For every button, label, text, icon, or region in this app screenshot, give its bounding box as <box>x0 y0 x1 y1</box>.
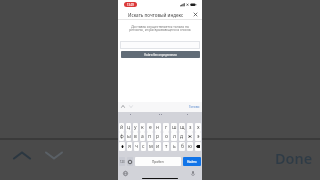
staticText: ш <box>172 124 177 131</box>
button[interactable]: Previous field <box>120 103 126 110</box>
button[interactable]: з <box>187 123 193 132</box>
button[interactable]: Shift <box>119 142 125 151</box>
button[interactable]: а <box>140 132 145 141</box>
staticText: м <box>149 143 153 150</box>
button[interactable]: о <box>163 132 169 141</box>
staticText: й <box>120 124 124 131</box>
button[interactable]: Готово <box>189 105 200 109</box>
button[interactable]: л <box>171 132 177 141</box>
staticText: з <box>189 124 192 131</box>
button[interactable]: в <box>133 132 138 141</box>
staticText: Done <box>275 148 313 168</box>
button[interactable]: н <box>155 123 161 132</box>
staticText: а <box>141 133 144 140</box>
button[interactable]: у <box>133 123 138 132</box>
staticText: ы <box>127 133 131 140</box>
button[interactable]: р <box>155 132 161 141</box>
staticText: Готово <box>189 105 200 109</box>
button[interactable]: Previous <box>9 146 35 164</box>
button[interactable]: э <box>195 132 201 141</box>
button[interactable]: ю <box>187 142 193 151</box>
button[interactable]: ы <box>126 132 131 141</box>
staticText: р <box>156 133 160 140</box>
button[interactable]: Пробел <box>135 157 181 166</box>
button[interactable]: 123 <box>119 157 125 166</box>
staticText: ч <box>135 143 138 150</box>
button[interactable]: к <box>140 123 145 132</box>
staticText: л <box>173 133 176 140</box>
button[interactable]: Backspace <box>195 142 201 151</box>
button[interactable]: с <box>141 142 146 151</box>
staticText: щ <box>180 124 185 131</box>
staticText: е <box>149 124 152 131</box>
staticText: 13:29 <box>127 3 134 7</box>
button[interactable]: Emoji <box>127 157 133 166</box>
staticText: б <box>181 143 184 150</box>
button[interactable]: д <box>179 132 185 141</box>
button[interactable]: е <box>147 123 153 132</box>
button[interactable]: ч <box>134 142 139 151</box>
button[interactable]: х <box>195 123 201 132</box>
staticText: Найти <box>187 160 197 164</box>
staticText: ю <box>188 143 192 150</box>
button[interactable]: щ <box>179 123 185 132</box>
button[interactable]: и <box>155 142 161 151</box>
button[interactable]: т <box>163 142 169 151</box>
staticText: я <box>128 143 131 150</box>
button[interactable]: ш <box>171 123 177 132</box>
button[interactable]: Найти без определения <box>121 51 200 58</box>
button[interactable]: Next <box>41 146 67 164</box>
staticText: и <box>156 143 160 150</box>
button[interactable]: п <box>147 132 153 141</box>
staticText: ь <box>173 143 176 150</box>
staticText: 123 <box>120 160 125 164</box>
staticText: с <box>142 143 145 150</box>
button[interactable]: я <box>127 142 132 151</box>
staticText: н <box>156 124 160 131</box>
button[interactable]: й <box>119 123 124 132</box>
staticText: в <box>134 133 137 140</box>
staticText: т <box>165 143 168 150</box>
staticText: ф <box>120 133 124 140</box>
staticText: д <box>180 133 184 140</box>
button[interactable]: Close <box>192 11 199 18</box>
staticText: Искать почтовый индекс <box>128 12 184 18</box>
staticText: ц <box>127 124 131 131</box>
button[interactable]: ж <box>187 132 193 141</box>
button[interactable]: Done <box>275 148 313 168</box>
staticText: п <box>148 133 152 140</box>
staticText: Найти без определения <box>144 53 177 57</box>
staticText: Доставка осуществляется только на регион… <box>118 24 202 32</box>
button[interactable]: ф <box>119 132 124 141</box>
staticText: г <box>165 124 168 131</box>
staticText: Пробел <box>152 160 164 164</box>
button[interactable]: м <box>148 142 153 151</box>
staticText: о <box>165 133 168 140</box>
button[interactable]: Next field <box>128 103 134 110</box>
button[interactable]: г <box>163 123 169 132</box>
button[interactable] <box>120 41 200 49</box>
staticText: х <box>197 124 200 131</box>
button[interactable]: Найти <box>183 157 201 166</box>
button[interactable]: б <box>179 142 185 151</box>
button[interactable]: ь <box>171 142 177 151</box>
staticText: к <box>141 124 144 131</box>
staticText: э <box>197 133 200 140</box>
staticText: ж <box>188 133 192 140</box>
button[interactable]: ц <box>126 123 131 132</box>
staticText: у <box>134 124 137 131</box>
